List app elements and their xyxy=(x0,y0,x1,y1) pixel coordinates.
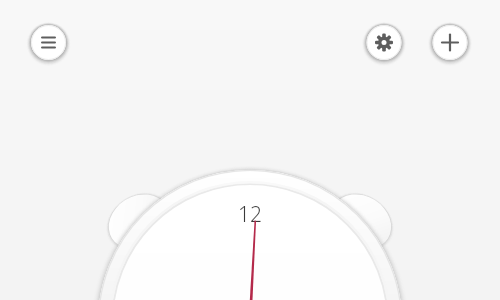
button[interactable]: Add alarm xyxy=(432,25,468,61)
button[interactable]: Menu xyxy=(31,25,67,61)
button[interactable]: Settings xyxy=(366,25,402,61)
button[interactable]: Alarm clock xyxy=(98,150,402,300)
